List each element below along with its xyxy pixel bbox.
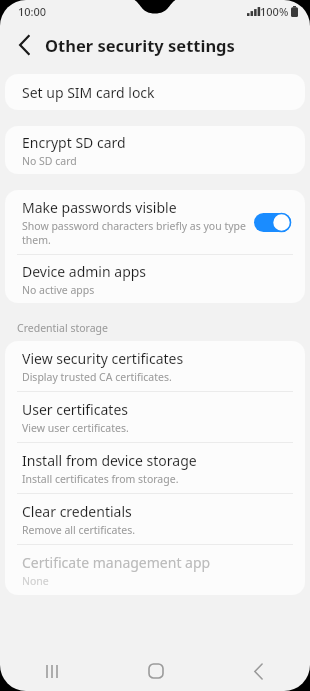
button[interactable]: Set up SIM card lock [5, 74, 305, 110]
staticText: Encrypt SD card [22, 133, 126, 152]
staticText: 10:00 [18, 4, 47, 19]
staticText: Credential storage [17, 321, 108, 335]
button[interactable]: Make passwords visible toggle [254, 213, 291, 232]
button[interactable]: Certificate management app [5, 545, 305, 595]
staticText: View security certificates [22, 349, 184, 368]
staticText: Show password characters briefly as you … [22, 219, 246, 247]
button[interactable]: Back [207, 651, 310, 691]
staticText: Certificate management app [22, 553, 211, 572]
staticText: Display trusted CA certificates. [22, 370, 172, 384]
staticText: Clear credentials [22, 502, 132, 521]
button[interactable]: Clear credentials [5, 494, 305, 544]
staticText: Make passwords visible [22, 198, 177, 217]
button[interactable]: Back [7, 28, 41, 62]
button[interactable]: Install from device storage [5, 443, 305, 493]
staticText: Set up SIM card lock [22, 83, 155, 102]
button[interactable]: User certificates [5, 392, 305, 442]
staticText: 100% [260, 4, 289, 19]
staticText: View user certificates. [22, 421, 129, 435]
staticText: Device admin apps [22, 262, 147, 281]
button[interactable]: View security certificates [5, 341, 305, 391]
staticText: No active apps [22, 283, 95, 297]
staticText: Install certificates from storage. [22, 472, 179, 486]
staticText: Install from device storage [22, 451, 197, 470]
staticText: Other security settings [45, 34, 235, 56]
staticText: User certificates [22, 400, 128, 419]
staticText: Remove all certificates. [22, 523, 136, 537]
button[interactable]: Recent apps [0, 651, 104, 691]
button[interactable]: Device admin apps [5, 255, 305, 303]
button[interactable]: Home [104, 651, 207, 691]
button[interactable]: Make passwords visible [5, 190, 305, 254]
staticText: None [22, 574, 49, 588]
staticText: No SD card [22, 154, 77, 168]
button[interactable]: Encrypt SD card [5, 126, 305, 174]
